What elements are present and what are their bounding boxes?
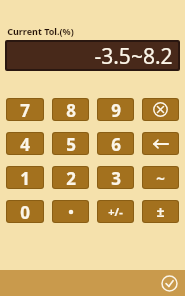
button[interactable]: Decimal point: [53, 201, 88, 222]
staticText: 7: [20, 99, 30, 120]
staticText: 0: [20, 201, 30, 222]
staticText: Current Tol.(%): [7, 25, 74, 37]
button[interactable]: Confirm: [159, 273, 179, 293]
button[interactable]: 7: [7, 99, 43, 120]
button[interactable]: 8: [53, 99, 88, 120]
button[interactable]: Backspace: [143, 133, 178, 154]
button[interactable]: ~: [143, 167, 178, 188]
staticText: 3: [111, 167, 121, 188]
staticText: -3.5~8.2: [94, 42, 173, 69]
staticText: 6: [111, 133, 121, 154]
button[interactable]: 0: [7, 201, 43, 222]
staticText: +/-: [108, 204, 123, 219]
button[interactable]: -3.5~8.2: [7, 42, 178, 69]
button[interactable]: 6: [98, 133, 133, 154]
button[interactable]: 1: [7, 167, 43, 188]
staticText: ±: [156, 202, 165, 221]
button[interactable]: 5: [53, 133, 88, 154]
button[interactable]: ±: [143, 201, 178, 222]
button[interactable]: 9: [98, 99, 133, 120]
staticText: 2: [66, 167, 76, 188]
button[interactable]: 3: [98, 167, 133, 188]
staticText: 5: [66, 133, 76, 154]
button[interactable]: 2: [53, 167, 88, 188]
staticText: 4: [20, 133, 30, 154]
button[interactable]: Clear: [143, 99, 178, 120]
button[interactable]: 4: [7, 133, 43, 154]
staticText: 1: [20, 167, 30, 188]
staticText: 8: [66, 99, 76, 120]
button[interactable]: +/-: [98, 201, 133, 222]
staticText: 9: [111, 99, 121, 120]
staticText: ~: [156, 168, 165, 188]
